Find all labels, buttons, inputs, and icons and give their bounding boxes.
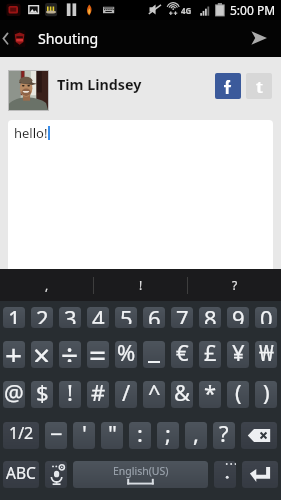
staticText: @	[4, 381, 24, 404]
staticText: ,	[45, 277, 49, 293]
button[interactable]: 1/2	[3, 422, 39, 449]
staticText: hello!	[14, 124, 48, 142]
staticText: *	[204, 381, 217, 404]
staticText: =	[89, 341, 107, 362]
staticText: Tim Lindsey	[57, 75, 142, 94]
button[interactable]: (	[227, 381, 249, 408]
button[interactable]: :	[129, 422, 151, 449]
staticText: English(US)	[113, 464, 169, 478]
button[interactable]: 5	[115, 307, 137, 328]
button[interactable]: €	[171, 341, 193, 368]
button[interactable]: ×	[31, 341, 53, 368]
button[interactable]: )	[255, 381, 277, 408]
button[interactable]: 9	[227, 307, 249, 328]
staticText: +	[5, 341, 23, 362]
button[interactable]: !	[94, 269, 187, 301]
button[interactable]: 6	[143, 307, 165, 328]
button[interactable]: Send	[240, 20, 281, 57]
staticText: '	[82, 422, 87, 445]
button[interactable]: 1	[3, 307, 25, 328]
button[interactable]: Share on Facebook	[215, 73, 241, 99]
button[interactable]: Backspace	[241, 422, 277, 449]
button[interactable]: 4	[87, 307, 109, 328]
button[interactable]: −	[45, 422, 67, 449]
staticText: #	[91, 381, 106, 404]
staticText: 5	[120, 307, 133, 324]
button[interactable]: ¥	[227, 341, 249, 368]
staticText: (	[235, 381, 242, 404]
button[interactable]: Symbols	[214, 461, 236, 488]
staticText: 2	[36, 307, 49, 324]
button[interactable]: ^	[143, 381, 165, 408]
button[interactable]: !	[59, 381, 81, 408]
staticText: 6	[148, 307, 161, 324]
button[interactable]: /	[115, 381, 137, 408]
button[interactable]: Space	[73, 461, 208, 488]
button[interactable]: =	[87, 341, 109, 368]
staticText: 3	[64, 307, 77, 324]
staticText: 4	[92, 307, 105, 324]
button[interactable]: "	[101, 422, 123, 449]
button[interactable]: #	[87, 381, 109, 408]
staticText: £	[204, 341, 217, 364]
button[interactable]: ₩	[255, 341, 277, 368]
staticText: !	[67, 381, 73, 404]
staticText: "	[108, 422, 117, 445]
button[interactable]: ,	[0, 269, 93, 301]
staticText: 4G	[181, 5, 192, 16]
button[interactable]: ?	[188, 269, 281, 301]
button[interactable]: ÷	[59, 341, 81, 368]
staticText: !	[139, 277, 143, 293]
staticText: :	[137, 422, 143, 445]
button[interactable]: Voice input	[45, 461, 67, 488]
staticText: )	[263, 381, 270, 404]
staticText: ^	[148, 381, 161, 404]
staticText: %	[117, 341, 136, 364]
staticText: Shouting	[38, 29, 99, 48]
button[interactable]: ?	[213, 422, 235, 449]
button[interactable]: %	[115, 341, 137, 368]
button[interactable]: @	[3, 381, 25, 408]
staticText: −	[50, 422, 63, 445]
button[interactable]	[143, 341, 165, 368]
staticText: ;	[165, 422, 171, 445]
button[interactable]: Navigate up	[0, 20, 33, 57]
button[interactable]: 2	[31, 307, 53, 328]
staticText: 5:00 PM	[230, 2, 276, 18]
button[interactable]: 7	[171, 307, 193, 328]
button[interactable]: &	[171, 381, 193, 408]
staticText: t	[256, 75, 263, 98]
button[interactable]: *	[199, 381, 221, 408]
button[interactable]: ;	[157, 422, 179, 449]
button[interactable]: '	[73, 422, 95, 449]
staticText: ¥	[232, 341, 245, 364]
staticText: $	[36, 381, 49, 404]
button[interactable]: Share on Twitter	[246, 73, 272, 99]
button[interactable]: 8	[199, 307, 221, 328]
staticText: 7	[176, 307, 189, 324]
button[interactable]: Tim Lindsey	[57, 75, 142, 94]
staticText: ?	[232, 277, 238, 293]
staticText: 0	[260, 307, 273, 324]
staticText: 9	[232, 307, 245, 324]
staticText: /	[122, 381, 131, 404]
button[interactable]: 3	[59, 307, 81, 328]
staticText: €	[176, 341, 189, 364]
staticText: &	[174, 381, 191, 404]
button[interactable]: ,	[185, 422, 207, 449]
staticText: 1/2	[9, 422, 34, 444]
button[interactable]: Enter	[242, 461, 278, 488]
staticText: 1	[8, 307, 21, 324]
button[interactable]: 0	[255, 307, 277, 328]
staticText: ,	[193, 422, 199, 445]
staticText: ×	[33, 341, 51, 362]
button[interactable]: $	[31, 381, 53, 408]
staticText: ÷	[61, 341, 79, 362]
staticText: 8	[204, 307, 217, 324]
staticText: ABC	[6, 462, 36, 483]
staticText: ?	[219, 422, 229, 445]
button[interactable]: +	[3, 341, 25, 368]
button[interactable]: ABC	[3, 461, 39, 488]
button[interactable]: £	[199, 341, 221, 368]
staticText: ₩	[259, 341, 274, 364]
